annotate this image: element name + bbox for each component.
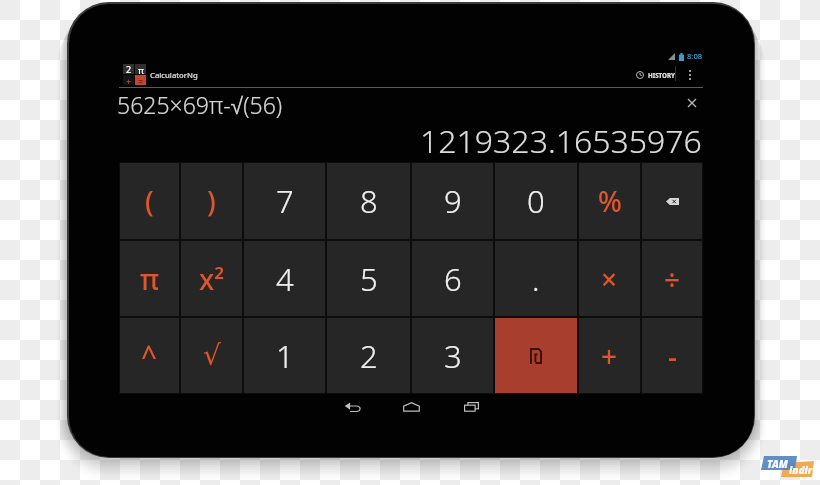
button[interactable]: HISTORY <box>630 63 681 86</box>
staticText: . <box>532 258 540 300</box>
staticText: 1219323.16535976 <box>420 119 702 156</box>
staticText: 4 <box>276 258 294 300</box>
staticText: TAM <box>767 457 788 471</box>
staticText: x² <box>199 260 225 298</box>
button[interactable]: π <box>120 241 179 316</box>
button[interactable]: Delete <box>642 163 702 239</box>
staticText: √ <box>203 339 221 372</box>
button[interactable]: 8 <box>327 163 410 239</box>
button[interactable]: √ <box>181 318 242 393</box>
button[interactable]: 9 <box>412 163 493 239</box>
button[interactable]: ) <box>181 163 242 239</box>
staticText: ) <box>207 182 216 220</box>
button[interactable]: 0 <box>495 163 577 239</box>
button[interactable]: Back <box>332 396 372 418</box>
staticText: CalculatorNg <box>150 70 198 81</box>
staticText: × <box>601 260 618 298</box>
staticText: 0 <box>527 180 545 222</box>
staticText: 5625×69π-√(56) <box>117 89 283 120</box>
other: Delete <box>666 198 679 205</box>
button[interactable]: 3 <box>412 318 493 393</box>
button[interactable]: % <box>579 163 640 239</box>
staticText: 1 <box>276 335 294 377</box>
button[interactable]: More options <box>681 63 699 86</box>
staticText: ÷ <box>664 260 681 298</box>
staticText: 3 <box>444 335 462 377</box>
staticText: π <box>140 260 160 298</box>
staticText: + <box>126 75 132 85</box>
other: Equals <box>530 348 542 364</box>
button[interactable]: × <box>579 241 640 316</box>
button[interactable]: 5 <box>327 241 410 316</box>
staticText: - <box>668 337 677 375</box>
staticText: 6 <box>444 258 462 300</box>
staticText: 8 <box>360 180 378 222</box>
button[interactable]: ^ <box>120 318 179 393</box>
staticText: = <box>138 75 144 85</box>
staticText: ^ <box>141 337 158 375</box>
staticText: π <box>138 64 144 74</box>
staticText: 7 <box>276 180 294 222</box>
staticText: 2 <box>126 64 132 73</box>
button[interactable]: - <box>642 318 702 393</box>
staticText: + <box>601 337 618 375</box>
staticText: 5 <box>360 258 378 300</box>
button[interactable]: Home <box>391 396 431 418</box>
button[interactable]: 2 <box>327 318 410 393</box>
button[interactable]: Recents <box>451 396 491 418</box>
button[interactable]: . <box>495 241 577 316</box>
staticText: indir <box>789 463 813 477</box>
button[interactable]: + <box>579 318 640 393</box>
button[interactable]: 4 <box>244 241 325 316</box>
button[interactable]: Equals <box>495 318 577 393</box>
staticText: 2 <box>360 335 378 377</box>
staticText: % <box>598 182 622 220</box>
button[interactable]: 7 <box>244 163 325 239</box>
button[interactable]: Clear <box>683 94 701 112</box>
button[interactable]: x² <box>181 241 242 316</box>
button[interactable]: 1 <box>244 318 325 393</box>
staticText: 8:08 <box>687 51 703 61</box>
staticText: HISTORY <box>648 71 675 79</box>
staticText: 9 <box>444 180 462 222</box>
button[interactable]: ÷ <box>642 241 702 316</box>
button[interactable]: ( <box>120 163 179 239</box>
button[interactable]: 6 <box>412 241 493 316</box>
staticText: ( <box>145 182 154 220</box>
